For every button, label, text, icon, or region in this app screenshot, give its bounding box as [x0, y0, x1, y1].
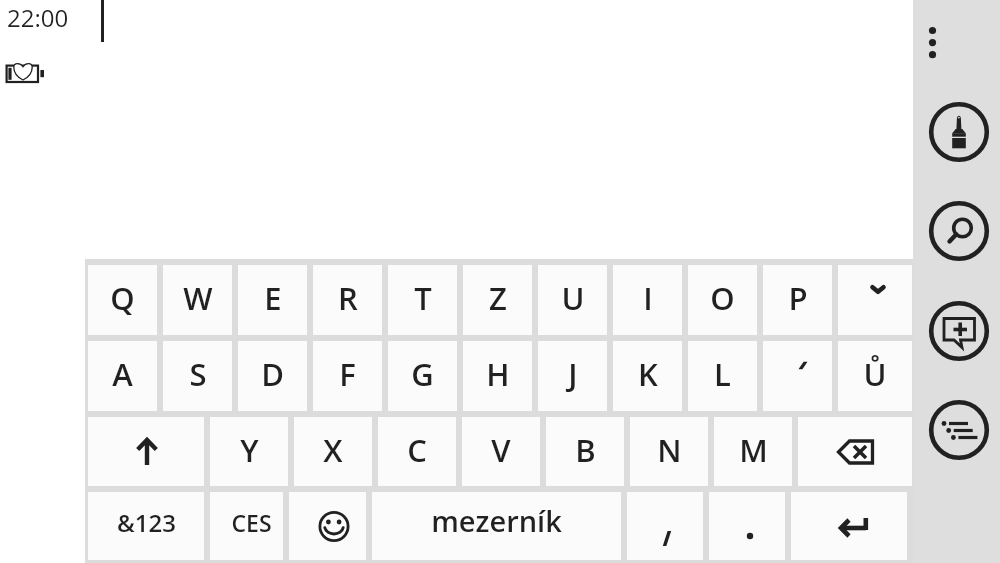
staticText: E: [264, 277, 282, 319]
staticText: A: [112, 353, 133, 395]
button[interactable]: &123: [88, 492, 204, 560]
staticText: W: [183, 277, 213, 319]
staticText: C: [407, 429, 427, 471]
staticText: B: [575, 429, 596, 471]
button[interactable]: A: [88, 341, 157, 411]
button[interactable]: P: [763, 265, 832, 335]
button[interactable]: Search: [929, 201, 989, 261]
button[interactable]: List: [929, 400, 989, 460]
staticText: X: [323, 429, 343, 471]
button[interactable]: O: [688, 265, 757, 335]
staticText: T: [414, 277, 432, 319]
button[interactable]: H: [463, 341, 532, 411]
button[interactable]: Add comment: [929, 301, 989, 361]
button[interactable]: V: [462, 417, 540, 486]
staticText: V: [491, 429, 511, 471]
staticText: Y: [240, 429, 259, 471]
button[interactable]: Ů: [838, 341, 912, 411]
button[interactable]: S: [163, 341, 232, 411]
button[interactable]: D: [238, 341, 307, 411]
staticText: P: [788, 277, 808, 319]
staticText: 22:00: [7, 1, 69, 34]
staticText: D: [261, 353, 284, 395]
button[interactable]: T: [388, 265, 457, 335]
button[interactable]: N: [630, 417, 708, 486]
button[interactable]: R: [313, 265, 382, 335]
button[interactable]: Backspace: [798, 417, 912, 486]
button[interactable]: Period: [709, 492, 785, 560]
button[interactable]: K: [613, 341, 682, 411]
staticText: S: [189, 353, 207, 395]
button[interactable]: E: [238, 265, 307, 335]
button[interactable]: More options: [918, 12, 964, 62]
button[interactable]: L: [688, 341, 757, 411]
button[interactable]: C: [378, 417, 456, 486]
staticText: CES: [231, 507, 272, 538]
button[interactable]: Acute accent: [763, 341, 832, 411]
staticText: K: [638, 353, 658, 395]
staticText: F: [339, 353, 356, 395]
button[interactable]: Y: [210, 417, 288, 486]
staticText: H: [486, 353, 510, 395]
staticText: L: [714, 353, 731, 395]
button[interactable]: U: [538, 265, 607, 335]
button[interactable]: M: [714, 417, 792, 486]
button[interactable]: X: [294, 417, 372, 486]
staticText: I: [643, 277, 653, 319]
staticText: J: [568, 353, 578, 395]
staticText: Q: [110, 277, 135, 319]
staticText: &123: [117, 506, 176, 539]
button[interactable]: Comma: [627, 492, 703, 560]
button[interactable]: mezerník: [372, 492, 621, 560]
button[interactable]: Z: [463, 265, 532, 335]
button[interactable]: G: [388, 341, 457, 411]
button[interactable]: Enter: [791, 492, 907, 560]
button[interactable]: W: [163, 265, 232, 335]
button[interactable]: B: [546, 417, 624, 486]
button[interactable]: Emoji: [289, 492, 366, 560]
button[interactable]: I: [613, 265, 682, 335]
button[interactable]: Brush: [929, 102, 989, 162]
button[interactable]: J: [538, 341, 607, 411]
button[interactable]: F: [313, 341, 382, 411]
staticText: N: [657, 429, 682, 471]
staticText: Z: [489, 277, 507, 319]
button[interactable]: CES: [210, 492, 283, 560]
staticText: G: [411, 353, 434, 395]
staticText: Ů: [863, 353, 887, 395]
staticText: U: [561, 277, 585, 319]
staticText: R: [338, 277, 358, 319]
button[interactable]: Shift: [88, 417, 204, 486]
staticText: mezerník: [431, 501, 562, 540]
staticText: O: [710, 277, 735, 319]
staticText: M: [739, 429, 768, 471]
button[interactable]: Q: [88, 265, 157, 335]
button[interactable]: Hide keyboard: [838, 265, 912, 335]
